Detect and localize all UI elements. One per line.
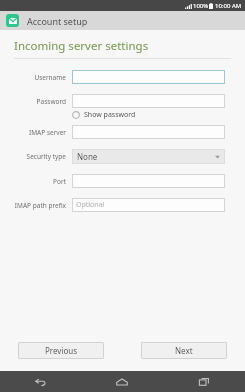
button[interactable]: Email app icon	[6, 14, 19, 27]
button[interactable]	[72, 174, 225, 188]
staticText: Username	[34, 73, 66, 82]
staticText: IMAP path prefix	[14, 201, 66, 210]
staticText: 10:00 AM	[215, 2, 242, 10]
staticText: Next	[175, 345, 193, 356]
staticText: Port	[53, 177, 66, 186]
button[interactable]: Show password	[72, 110, 136, 120]
staticText: None	[77, 151, 215, 162]
button[interactable]: Back	[0, 371, 81, 392]
staticText: Security type	[26, 152, 66, 161]
staticText: Optional	[76, 200, 105, 210]
staticText: Show password	[84, 110, 136, 120]
button[interactable]	[72, 125, 225, 139]
button[interactable]: Recent apps	[163, 371, 245, 392]
button[interactable]: Next	[141, 342, 227, 359]
button[interactable]: None	[72, 149, 225, 164]
button[interactable]: Home	[81, 371, 163, 392]
staticText: Password	[36, 97, 66, 106]
button[interactable]: Optional	[72, 198, 225, 212]
staticText: Previous	[45, 345, 78, 356]
button[interactable]: Previous	[18, 342, 104, 359]
staticText: 100%	[193, 2, 209, 10]
button[interactable]	[72, 70, 225, 84]
staticText: IMAP server	[29, 128, 66, 137]
button[interactable]	[72, 94, 225, 108]
staticText: Incoming server settings	[14, 38, 149, 54]
staticText: Account setup	[27, 15, 88, 27]
